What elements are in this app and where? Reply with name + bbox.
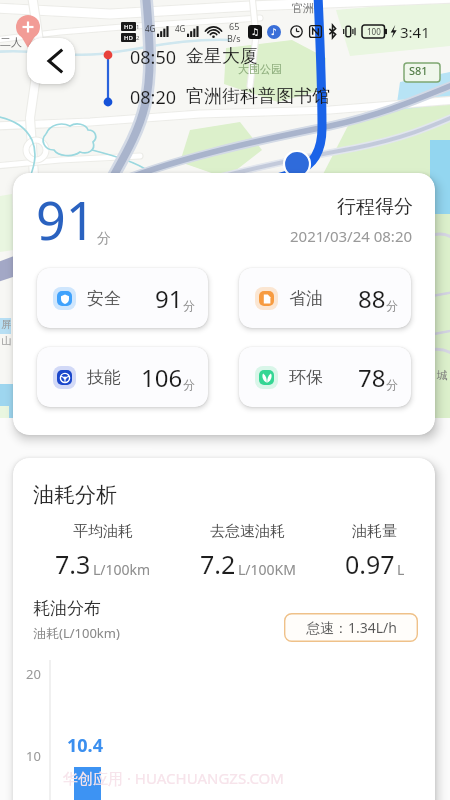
staticText: L [397,560,405,579]
staticText: 官洲 [292,1,314,15]
staticText: 耗油分布 [33,598,101,619]
staticText: HD [124,23,133,31]
staticText: ♪ [271,27,277,37]
staticText: 10.4 [67,733,103,758]
staticText: 2 [136,34,140,42]
staticText: 08:50 [130,45,177,70]
staticText: ♫ [251,27,260,37]
staticText: L/100KM [238,560,296,579]
staticText: 7.3 [55,547,91,581]
button[interactable]: 省油 [239,268,411,328]
staticText: 省油 [289,288,323,309]
staticText: B/s [227,32,241,44]
staticText: 4G [175,23,186,34]
staticText: 20 [26,665,41,683]
staticText: 安全 [87,288,121,309]
staticText: 10 [26,747,41,765]
staticText: 88 [358,282,386,315]
staticText: 3:41 [400,22,430,42]
staticText: 怠速：1.34L/h [306,618,397,637]
staticText: 分 [183,377,195,392]
staticText: 分 [183,298,195,313]
staticText: 油耗分析 [33,482,117,508]
staticText: 行程得分 [337,195,413,219]
staticText: 金星大厦 [186,45,258,68]
staticText: 0.97 [345,547,395,581]
staticText: 4G [145,23,156,34]
staticText: 大围公园 [238,62,282,76]
staticText: 7.2 [200,547,236,581]
button[interactable]: 技能 [37,347,208,407]
staticText: 环保 [289,367,323,388]
staticText: 2021/03/24 08:20 [290,226,413,246]
staticText: 油耗(L/100km) [33,624,120,642]
button[interactable]: 安全 [37,268,208,328]
staticText: 二人 [0,35,22,49]
staticText: 106 [141,361,183,394]
staticText: 官洲街科普图书馆 [186,85,330,108]
staticText: 91 [36,184,96,255]
staticText: 去怠速油耗 [210,522,285,541]
staticText: 山 [1,334,11,347]
button[interactable]: 怠速：1.34L/h [284,613,418,642]
staticText: 城 [437,368,448,382]
staticText: 78 [358,361,386,394]
staticText: L/100km [93,560,151,579]
staticText: 屏 [1,318,11,331]
button[interactable]: Back [27,38,75,84]
staticText: 91 [155,282,183,315]
staticText: 分 [97,230,111,248]
staticText: 华创应用 · HUACHUANGZS.COM [63,768,284,788]
staticText: HD [124,34,133,42]
staticText: 1 [136,23,140,31]
staticText: 分 [386,298,398,313]
staticText: 分 [386,377,398,392]
staticText: 08:20 [130,85,177,110]
staticText: S81 [409,63,428,78]
staticText: 100 [367,26,381,37]
staticText: 65 [229,20,240,32]
staticText: 油耗量 [352,522,397,541]
staticText: 平均油耗 [73,522,133,541]
button[interactable]: 环保 [239,347,411,407]
staticText: 技能 [87,367,121,388]
